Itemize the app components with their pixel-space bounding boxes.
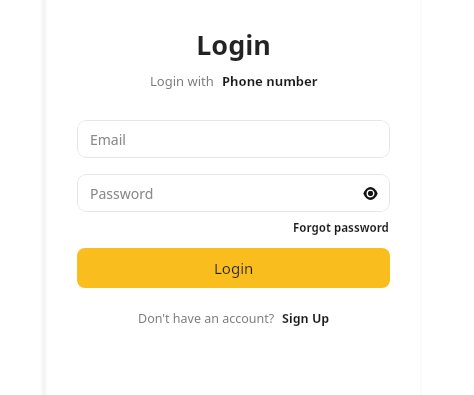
button[interactable]: Forgot password	[293, 220, 389, 236]
button[interactable]: Phone number	[222, 72, 318, 90]
staticText: Forgot password	[293, 220, 389, 236]
staticText: Don't have an account?	[138, 310, 275, 327]
button[interactable]: Email	[77, 120, 390, 158]
staticText: Email	[90, 130, 126, 149]
staticText: Login	[214, 258, 254, 278]
button[interactable]: Login	[77, 248, 390, 288]
button[interactable]: Show password	[359, 182, 381, 204]
staticText: Sign Up	[282, 310, 330, 327]
staticText: Phone number	[222, 72, 318, 90]
staticText: Login with	[150, 72, 214, 90]
button[interactable]: Sign Up	[282, 310, 330, 327]
button[interactable]: Password	[77, 174, 390, 212]
staticText: Password	[90, 184, 154, 203]
staticText: Login	[196, 26, 271, 63]
